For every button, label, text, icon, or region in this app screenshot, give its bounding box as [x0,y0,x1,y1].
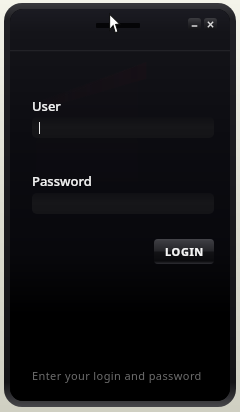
staticText: Password [32,172,92,190]
button[interactable]: Minimize [188,18,201,30]
staticText: Enter your login and password [32,368,202,383]
staticText: LOGIN [165,244,204,259]
button[interactable]: User input [32,117,214,138]
button[interactable]: LOGIN [154,239,214,264]
button[interactable]: Close [204,18,217,30]
button[interactable] [96,23,140,28]
staticText: User [32,97,61,115]
